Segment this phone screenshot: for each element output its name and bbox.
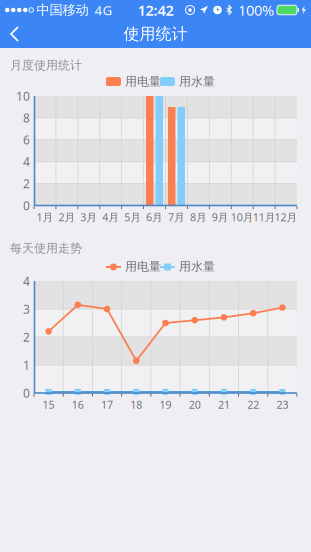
staticText: 16 xyxy=(72,397,84,412)
staticText: 1 xyxy=(23,357,30,373)
staticText: 10 xyxy=(16,88,30,104)
staticText: 用电量 xyxy=(125,74,161,89)
staticText: 使用统计 xyxy=(123,24,187,44)
staticText: 8月 xyxy=(190,210,207,224)
staticText: 21 xyxy=(218,397,230,412)
staticText: 6月 xyxy=(146,210,163,224)
staticText: 用水量 xyxy=(179,74,215,89)
staticText: 中国移动 xyxy=(36,2,88,18)
staticText: 2 xyxy=(23,329,30,345)
button[interactable]: 返回 xyxy=(0,20,32,48)
staticText: 12月 xyxy=(274,210,297,224)
staticText: 4月 xyxy=(102,210,119,224)
staticText: 17 xyxy=(101,397,113,412)
staticText: 12:42 xyxy=(137,0,173,20)
staticText: 5月 xyxy=(124,210,141,224)
staticText: 4 xyxy=(23,273,30,289)
staticText: 用电量 xyxy=(125,259,161,274)
staticText: 11月 xyxy=(253,210,276,224)
staticText: 6 xyxy=(23,132,30,148)
staticText: 4G xyxy=(94,1,112,19)
staticText: 月度使用统计 xyxy=(10,58,82,73)
staticText: 3 xyxy=(23,301,30,317)
staticText: 用水量 xyxy=(179,259,215,274)
staticText: 9月 xyxy=(212,210,229,224)
staticText: 2月 xyxy=(58,210,75,224)
staticText: 0 xyxy=(23,197,30,213)
staticText: 100% xyxy=(238,0,274,20)
staticText: 2 xyxy=(23,176,30,191)
staticText: 23 xyxy=(276,397,288,412)
staticText: 22 xyxy=(247,397,259,412)
staticText: 10月 xyxy=(231,210,254,224)
staticText: 0 xyxy=(23,385,30,401)
staticText: 7月 xyxy=(168,210,185,224)
staticText: 3月 xyxy=(80,210,97,224)
staticText: 18 xyxy=(130,397,142,412)
staticText: 20 xyxy=(189,397,201,412)
staticText: 每天使用走势 xyxy=(10,241,82,256)
staticText: 15 xyxy=(43,397,55,412)
staticText: 1月 xyxy=(36,210,53,224)
staticText: 4 xyxy=(23,154,30,170)
staticText: 8 xyxy=(23,110,30,126)
staticText: 19 xyxy=(159,397,171,412)
